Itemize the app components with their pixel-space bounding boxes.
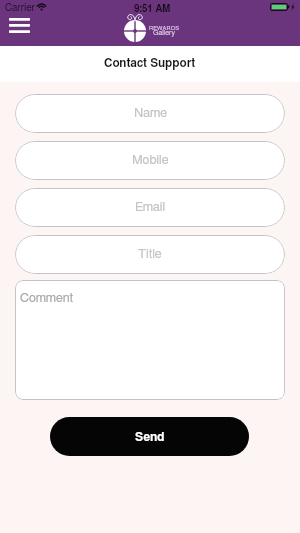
staticText: Mobile	[132, 154, 169, 167]
button[interactable]: Mobile	[15, 141, 285, 180]
staticText: REWARDS	[149, 25, 180, 31]
staticText: Name	[134, 107, 167, 120]
button[interactable]: Email	[15, 188, 285, 227]
button[interactable]: Comment	[15, 280, 285, 400]
staticText: Send	[135, 431, 165, 443]
staticText: Gallery	[153, 29, 175, 36]
staticText: Title	[138, 248, 162, 261]
button[interactable]: Send	[50, 417, 249, 456]
staticText: Contact Support	[104, 58, 196, 70]
button[interactable]: Title	[15, 235, 285, 274]
staticText: 9:51 AM	[134, 4, 171, 14]
button[interactable]: Name	[15, 94, 285, 133]
staticText: Email	[135, 201, 166, 214]
staticText: Comment	[20, 292, 73, 305]
button[interactable]: Open navigation menu	[4, 13, 35, 38]
staticText: Carrier	[5, 3, 35, 13]
